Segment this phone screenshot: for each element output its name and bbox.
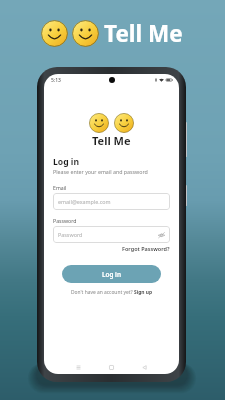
button[interactable]: email@example.com [53, 193, 170, 210]
button[interactable]: Password [53, 226, 170, 243]
staticText: Password [53, 217, 77, 224]
button[interactable]: Sign up [134, 289, 152, 296]
staticText: 5:13 [51, 77, 61, 84]
staticText: Log in [53, 156, 79, 168]
button[interactable]: Log in [62, 265, 161, 283]
staticText: Log in [102, 270, 121, 279]
button[interactable]: Back [138, 361, 151, 374]
staticText: Email [53, 184, 67, 191]
staticText: email@example.com [58, 198, 111, 205]
staticText: Please enter your email and password [53, 168, 148, 175]
staticText: Tell Me [92, 133, 131, 148]
button[interactable]: Show password [158, 232, 165, 238]
staticText: Password [58, 231, 83, 238]
button[interactable]: Recent apps [72, 361, 85, 374]
staticText: Tell Me [104, 18, 183, 49]
button[interactable]: Forgot Password? [122, 245, 170, 252]
button[interactable]: Home [105, 361, 118, 374]
staticText: Don't have an account yet? [71, 289, 134, 296]
